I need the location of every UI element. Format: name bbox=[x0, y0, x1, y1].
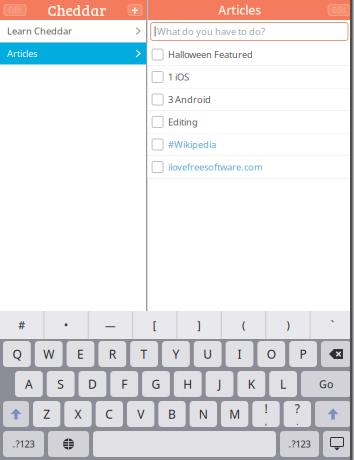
button[interactable]: C bbox=[96, 401, 123, 427]
button[interactable]: A bbox=[15, 371, 43, 397]
staticText: H bbox=[183, 376, 192, 392]
staticText: Q bbox=[12, 346, 21, 362]
button[interactable]: U bbox=[194, 341, 222, 367]
staticText: J bbox=[218, 376, 221, 392]
button[interactable]: W bbox=[35, 341, 63, 367]
staticText: .?123 bbox=[288, 438, 310, 450]
button[interactable]: D bbox=[79, 371, 106, 397]
staticText: ` bbox=[331, 318, 334, 332]
button[interactable]: #Wikipedia bbox=[148, 133, 354, 155]
button[interactable]: Articles bbox=[0, 42, 146, 64]
button[interactable]: L bbox=[269, 371, 297, 397]
staticText: Halloween Featured bbox=[168, 48, 253, 61]
button[interactable]: # bbox=[0, 311, 43, 339]
button[interactable]: N bbox=[190, 401, 217, 427]
staticText: ! bbox=[264, 401, 267, 417]
staticText: Z bbox=[43, 406, 50, 422]
button[interactable]: ] bbox=[177, 311, 221, 339]
staticText: , bbox=[265, 417, 267, 427]
staticText: ] bbox=[197, 318, 201, 332]
staticText: L bbox=[280, 376, 286, 392]
button[interactable]: I bbox=[226, 341, 253, 367]
staticText: Edit bbox=[332, 5, 346, 15]
button[interactable]: ( bbox=[222, 311, 265, 339]
button[interactable]: Shift bbox=[3, 401, 29, 427]
staticText: I bbox=[237, 346, 241, 362]
staticText: F bbox=[121, 376, 127, 392]
button[interactable]: Halloween Featured bbox=[148, 43, 354, 65]
button[interactable]: Editing bbox=[148, 111, 354, 133]
button[interactable]: B bbox=[158, 401, 186, 427]
button[interactable]: .?123 bbox=[280, 431, 319, 457]
button[interactable]: Y bbox=[162, 341, 190, 367]
button[interactable]: H bbox=[174, 371, 202, 397]
button[interactable]: R bbox=[98, 341, 126, 367]
button[interactable]: J bbox=[206, 371, 233, 397]
staticText: X bbox=[74, 406, 81, 422]
button[interactable]: ? bbox=[284, 401, 311, 427]
staticText: V bbox=[137, 406, 144, 422]
button[interactable]: Hide keyboard bbox=[323, 431, 351, 457]
button[interactable]: 3 Android bbox=[148, 88, 354, 110]
button[interactable]: P bbox=[289, 341, 317, 367]
button[interactable]: Edit bbox=[328, 4, 350, 15]
button[interactable]: G bbox=[142, 371, 170, 397]
staticText: A bbox=[25, 376, 33, 392]
staticText: D bbox=[88, 376, 97, 392]
staticText: R bbox=[109, 346, 116, 362]
staticText: Y bbox=[172, 346, 179, 362]
button[interactable]: F bbox=[110, 371, 138, 397]
button[interactable]: ilovefreesoftware.com bbox=[148, 156, 354, 178]
button[interactable]: • bbox=[44, 311, 88, 339]
staticText: M bbox=[229, 406, 240, 422]
button[interactable]: S bbox=[47, 371, 75, 397]
button[interactable] bbox=[93, 431, 276, 457]
button[interactable]: O bbox=[257, 341, 285, 367]
button[interactable]: T bbox=[130, 341, 158, 367]
button[interactable]: K bbox=[237, 371, 265, 397]
staticText: N bbox=[199, 406, 208, 422]
staticText: B bbox=[168, 406, 176, 422]
button[interactable]: Learn Cheddar bbox=[0, 20, 146, 42]
button[interactable]: ` bbox=[311, 311, 354, 339]
button[interactable]: Delete bbox=[321, 341, 351, 367]
button[interactable]: Edit bbox=[4, 4, 26, 15]
button[interactable]: — bbox=[89, 311, 132, 339]
staticText: S bbox=[57, 376, 64, 392]
staticText: + bbox=[131, 2, 138, 18]
button[interactable]: Q bbox=[3, 341, 31, 367]
staticText: Editing bbox=[168, 116, 198, 128]
staticText: T bbox=[141, 346, 148, 362]
staticText: Edit bbox=[8, 5, 22, 15]
staticText: C bbox=[105, 406, 113, 422]
button[interactable]: .?123 bbox=[3, 431, 44, 457]
staticText: — bbox=[105, 318, 116, 332]
button[interactable]: E bbox=[67, 341, 94, 367]
staticText: Articles bbox=[218, 2, 261, 18]
button[interactable]: 1 iOS bbox=[148, 66, 354, 88]
button[interactable]: V bbox=[127, 401, 154, 427]
staticText: Cheddar bbox=[47, 0, 106, 20]
button[interactable]: Shift bbox=[315, 401, 351, 427]
button[interactable]: New list bbox=[128, 4, 142, 15]
button[interactable]: [ bbox=[133, 311, 176, 339]
button[interactable]: Z bbox=[33, 401, 60, 427]
staticText: E bbox=[77, 346, 84, 362]
staticText: ) bbox=[286, 318, 289, 332]
button[interactable]: ! bbox=[252, 401, 280, 427]
button[interactable]: Next keyboard bbox=[48, 431, 89, 457]
staticText: Learn Cheddar bbox=[7, 25, 72, 37]
staticText: O bbox=[267, 346, 276, 362]
button[interactable]: ) bbox=[266, 311, 310, 339]
staticText: Articles bbox=[7, 47, 37, 60]
staticText: • bbox=[64, 318, 68, 332]
staticText: What do you have to do? bbox=[157, 25, 265, 38]
button[interactable]: M bbox=[221, 401, 248, 427]
button[interactable]: Go bbox=[301, 371, 351, 397]
button[interactable]: X bbox=[64, 401, 92, 427]
staticText: ( bbox=[242, 318, 245, 332]
staticText: U bbox=[203, 346, 212, 362]
staticText: 1 iOS bbox=[168, 71, 189, 83]
staticText: 3 Android bbox=[168, 93, 211, 106]
